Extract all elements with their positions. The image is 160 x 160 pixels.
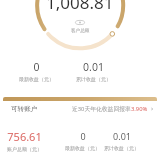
staticText: 近30天年化收益回报率 — [72, 105, 131, 113]
staticText: 最新收益（元） — [65, 145, 100, 151]
staticText: 累计收益（元） — [104, 145, 139, 151]
button[interactable]: Toggle amount visibility — [75, 20, 85, 25]
staticText: 0.01 — [83, 60, 104, 74]
staticText: 0 — [80, 130, 86, 142]
staticText: 0.01 — [113, 130, 131, 142]
staticText: 客户总额 — [71, 28, 90, 34]
button[interactable]: 可转账户 — [3, 101, 157, 117]
staticText: 3.90% — [131, 105, 148, 113]
staticText: 756.61 — [7, 129, 42, 144]
staticText: 0 — [33, 60, 40, 74]
staticText: 累计收益（元） — [76, 76, 111, 82]
staticText: 最新收益（元） — [19, 76, 54, 82]
staticText: 账户总额（元） — [7, 146, 42, 152]
staticText: 可转账户 — [11, 105, 38, 113]
staticText: 1,008.81 — [46, 0, 114, 14]
